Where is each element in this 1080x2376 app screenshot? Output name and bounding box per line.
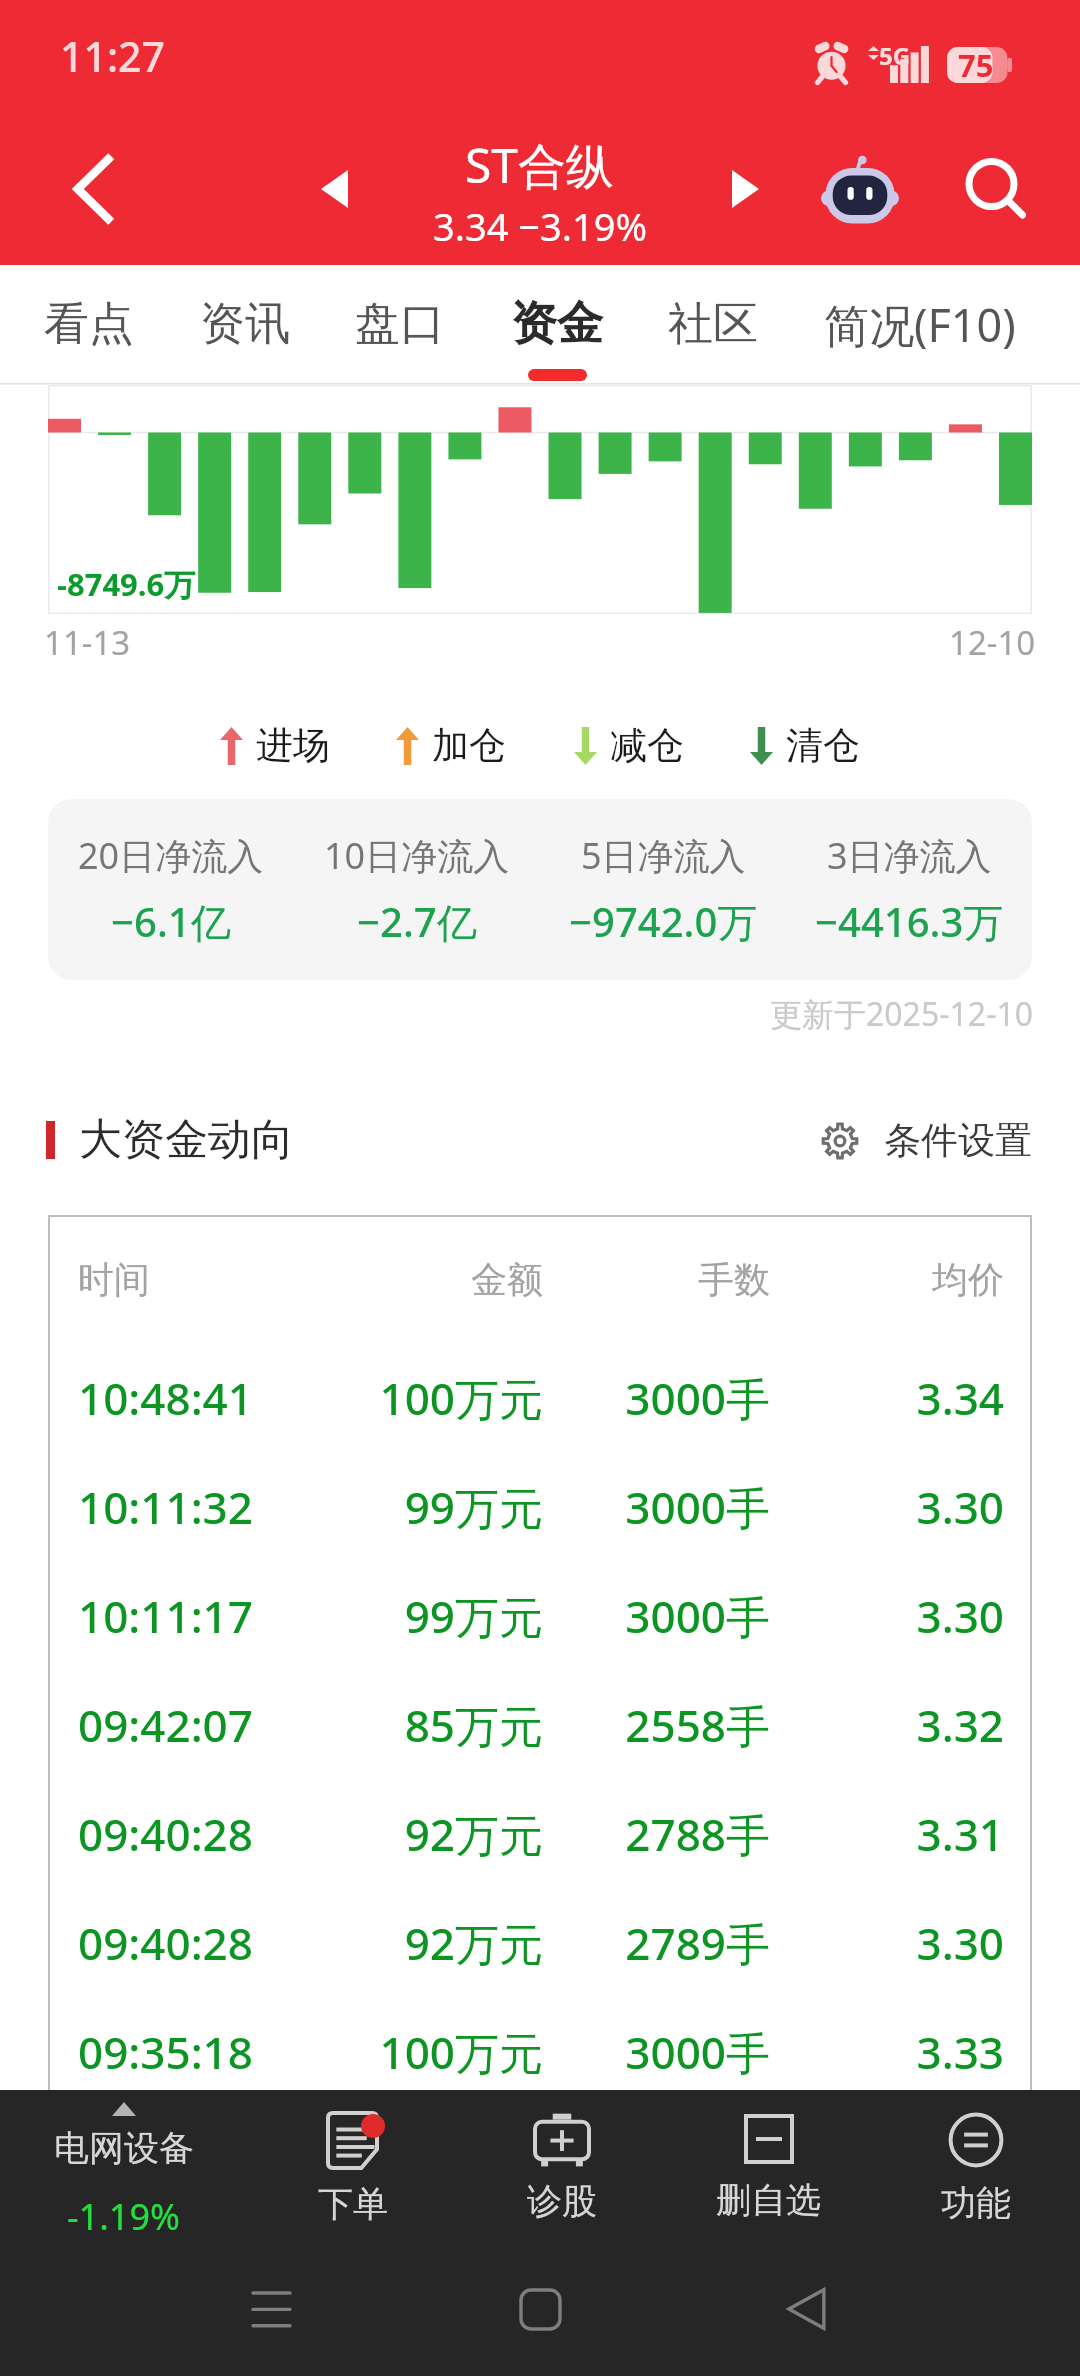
button[interactable]: Next stock bbox=[688, 112, 803, 265]
button[interactable]: 09:42:07 bbox=[78, 1670, 1004, 1779]
staticText: 2789手 bbox=[543, 1913, 770, 1973]
button[interactable]: AI assistant bbox=[790, 112, 930, 265]
staticText: 下单 bbox=[318, 2182, 388, 2226]
staticText: 手数 bbox=[543, 1257, 770, 1302]
button[interactable]: 功能 bbox=[872, 2090, 1080, 2276]
staticText: 3.33 bbox=[770, 2022, 1004, 2082]
button[interactable]: 减仓 bbox=[574, 722, 684, 769]
button[interactable]: 看点 bbox=[44, 291, 134, 385]
staticText: 2558手 bbox=[543, 1695, 770, 1755]
button[interactable]: 09:35:18 bbox=[78, 1997, 1004, 2106]
staticText: 12-10 bbox=[949, 620, 1036, 665]
button[interactable]: 删自选 bbox=[665, 2090, 872, 2276]
staticText: 92万元 bbox=[308, 1913, 543, 1973]
staticText: 3000手 bbox=[543, 1586, 770, 1646]
staticText: 20日净流入 bbox=[78, 831, 264, 880]
button[interactable]: 09:40:28 bbox=[78, 1779, 1004, 1888]
button[interactable]: Recents bbox=[203, 2276, 340, 2376]
staticText: 10:48:41 bbox=[78, 1368, 308, 1428]
staticText: 均价 bbox=[770, 1257, 1004, 1302]
button[interactable]: 10:48:41 bbox=[78, 1343, 1004, 1452]
staticText: 2788手 bbox=[543, 1804, 770, 1864]
button[interactable]: 诊股 bbox=[458, 2090, 665, 2276]
staticText: 3.30 bbox=[770, 1586, 1004, 1646]
staticText: 09:35:18 bbox=[78, 2022, 308, 2082]
staticText: 10:11:32 bbox=[78, 1477, 308, 1537]
staticText: 100万元 bbox=[308, 1368, 543, 1428]
button[interactable]: Home bbox=[472, 2276, 609, 2376]
staticText: 更新于2025-12-10 bbox=[770, 992, 1034, 1036]
staticText: -1.19% bbox=[67, 2192, 180, 2241]
staticText: 75 bbox=[958, 44, 994, 85]
button[interactable]: Search bbox=[925, 112, 1066, 265]
button[interactable]: 社区 bbox=[668, 291, 758, 385]
button[interactable]: 电网设备 bbox=[0, 2090, 247, 2276]
staticText: 3.34 −3.19% bbox=[433, 200, 647, 252]
staticText: 盘口 bbox=[355, 296, 445, 353]
staticText: 5G bbox=[879, 39, 911, 72]
staticText: 3.30 bbox=[770, 1477, 1004, 1537]
staticText: 11:27 bbox=[60, 28, 165, 84]
staticText: 诊股 bbox=[527, 2179, 597, 2223]
staticText: 功能 bbox=[941, 2181, 1011, 2225]
staticText: 进场 bbox=[256, 722, 330, 769]
staticText: ST合纵 bbox=[465, 132, 615, 198]
button[interactable]: 09:40:28 bbox=[78, 1888, 1004, 1997]
staticText: 09:42:07 bbox=[78, 1695, 308, 1755]
staticText: -8749.6万 bbox=[57, 563, 196, 605]
button[interactable]: 加仓 bbox=[396, 722, 506, 769]
button[interactable]: 10:11:17 bbox=[78, 1561, 1004, 1670]
staticText: 条件设置 bbox=[884, 1117, 1032, 1164]
staticText: 09:40:28 bbox=[78, 1913, 308, 1973]
staticText: 3.32 bbox=[770, 1695, 1004, 1755]
staticText: 10:11:17 bbox=[78, 1586, 308, 1646]
staticText: 3日净流入 bbox=[827, 831, 992, 880]
button[interactable]: 资讯 bbox=[200, 291, 290, 385]
button[interactable]: Back bbox=[737, 2276, 874, 2376]
staticText: 85万元 bbox=[308, 1695, 543, 1755]
button[interactable]: Previous stock bbox=[277, 112, 392, 265]
staticText: 电网设备 bbox=[54, 2126, 194, 2170]
staticText: 5日净流入 bbox=[581, 831, 746, 880]
staticText: 资讯 bbox=[200, 296, 290, 353]
staticText: 资金 bbox=[511, 295, 603, 353]
staticText: 92万元 bbox=[308, 1804, 543, 1864]
staticText: 11-13 bbox=[44, 620, 131, 665]
button[interactable]: 简况(F10) bbox=[824, 291, 1016, 385]
staticText: 大资金动向 bbox=[79, 1113, 294, 1167]
button[interactable]: 盘口 bbox=[355, 291, 445, 385]
staticText: 金额 bbox=[308, 1257, 543, 1302]
button[interactable]: Back bbox=[33, 112, 153, 265]
staticText: 3.30 bbox=[770, 1913, 1004, 1973]
staticText: −9742.0万 bbox=[569, 894, 758, 949]
staticText: 清仓 bbox=[786, 722, 860, 769]
button[interactable]: 清仓 bbox=[750, 722, 860, 769]
staticText: 看点 bbox=[44, 296, 134, 353]
button[interactable]: 进场 bbox=[220, 722, 330, 769]
staticText: 社区 bbox=[668, 296, 758, 353]
staticText: −6.1亿 bbox=[111, 894, 231, 949]
button[interactable]: 条件设置 bbox=[822, 1117, 1032, 1164]
staticText: 10日净流入 bbox=[324, 831, 510, 880]
staticText: 删自选 bbox=[716, 2178, 821, 2222]
staticText: 99万元 bbox=[308, 1477, 543, 1537]
staticText: 3000手 bbox=[543, 1477, 770, 1537]
button[interactable]: 下单 bbox=[247, 2090, 458, 2276]
button[interactable]: 资金 bbox=[511, 291, 603, 385]
staticText: 3000手 bbox=[543, 1368, 770, 1428]
staticText: −4416.3万 bbox=[815, 894, 1004, 949]
staticText: 3.34 bbox=[770, 1368, 1004, 1428]
staticText: 3.31 bbox=[770, 1804, 1004, 1864]
button[interactable]: 10:11:32 bbox=[78, 1452, 1004, 1561]
staticText: 09:40:28 bbox=[78, 1804, 308, 1864]
staticText: 减仓 bbox=[610, 722, 684, 769]
staticText: 100万元 bbox=[308, 2022, 543, 2082]
staticText: −2.7亿 bbox=[357, 894, 477, 949]
staticText: 加仓 bbox=[432, 722, 506, 769]
staticText: 简况(F10) bbox=[824, 294, 1016, 355]
staticText: 时间 bbox=[78, 1257, 308, 1302]
staticText: 99万元 bbox=[308, 1586, 543, 1646]
staticText: 3000手 bbox=[543, 2022, 770, 2082]
